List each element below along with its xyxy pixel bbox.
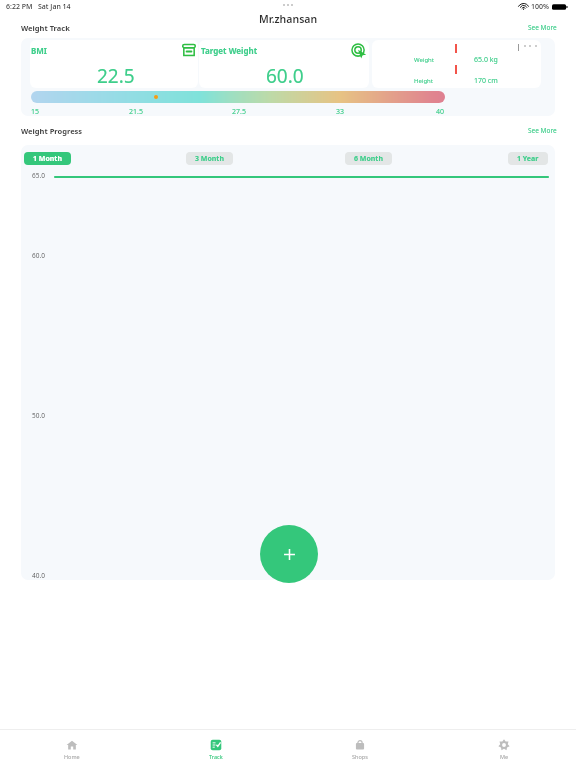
button[interactable]: Home <box>0 730 144 768</box>
button[interactable]: Target Weight <box>199 40 369 88</box>
button[interactable]: 6 Month <box>345 152 392 165</box>
staticText: 22.5 <box>97 63 135 88</box>
staticText: 6:22 PM <box>6 2 33 12</box>
staticText: Target Weight <box>201 45 258 56</box>
staticText: 50.0 <box>32 411 45 420</box>
staticText: 6 Month <box>354 154 383 164</box>
button[interactable]: 1 Month <box>24 152 71 165</box>
staticText: Weight Track <box>21 23 70 33</box>
staticText: 170 cm <box>474 76 498 86</box>
button[interactable]: Weight <box>372 40 541 88</box>
staticText: 27.5 <box>232 107 246 116</box>
button[interactable]: See More <box>526 21 559 34</box>
staticText: BMI <box>31 45 47 56</box>
staticText: 15 <box>31 107 40 116</box>
staticText: 40 <box>436 107 445 116</box>
staticText: Shops <box>352 753 368 760</box>
button[interactable]: Shops <box>288 730 432 768</box>
staticText: 3 Month <box>195 154 224 164</box>
button[interactable]: Add weight record <box>260 525 318 583</box>
staticText: See More <box>528 126 557 135</box>
staticText: 1 Year <box>517 154 539 164</box>
staticText: 60.0 <box>32 251 45 260</box>
staticText: 60.0 <box>266 63 304 88</box>
staticText: 100% <box>531 2 549 12</box>
staticText: 65.0 kg <box>474 55 498 65</box>
button[interactable]: 3 Month <box>186 152 233 165</box>
button[interactable]: 1 Year <box>508 152 548 165</box>
staticText: Mr.zhansan <box>259 12 318 26</box>
staticText: Track <box>209 753 223 760</box>
staticText: Home <box>64 753 80 760</box>
staticText: Sat Jan 14 <box>38 2 71 12</box>
button[interactable]: Track <box>144 730 288 768</box>
staticText: Weight <box>414 56 434 64</box>
button[interactable]: BMI <box>30 40 198 88</box>
staticText: Height <box>414 77 433 85</box>
staticText: 40.0 <box>32 571 45 580</box>
staticText: 21.5 <box>129 107 143 116</box>
staticText: See More <box>528 23 557 32</box>
button[interactable]: Me <box>432 730 576 768</box>
staticText: 65.0 <box>32 171 45 180</box>
staticText: Me <box>500 753 509 760</box>
staticText: Weight Progress <box>21 126 83 136</box>
button[interactable]: See More <box>526 124 559 137</box>
staticText: 1 Month <box>33 154 62 164</box>
staticText: 33 <box>336 107 345 116</box>
